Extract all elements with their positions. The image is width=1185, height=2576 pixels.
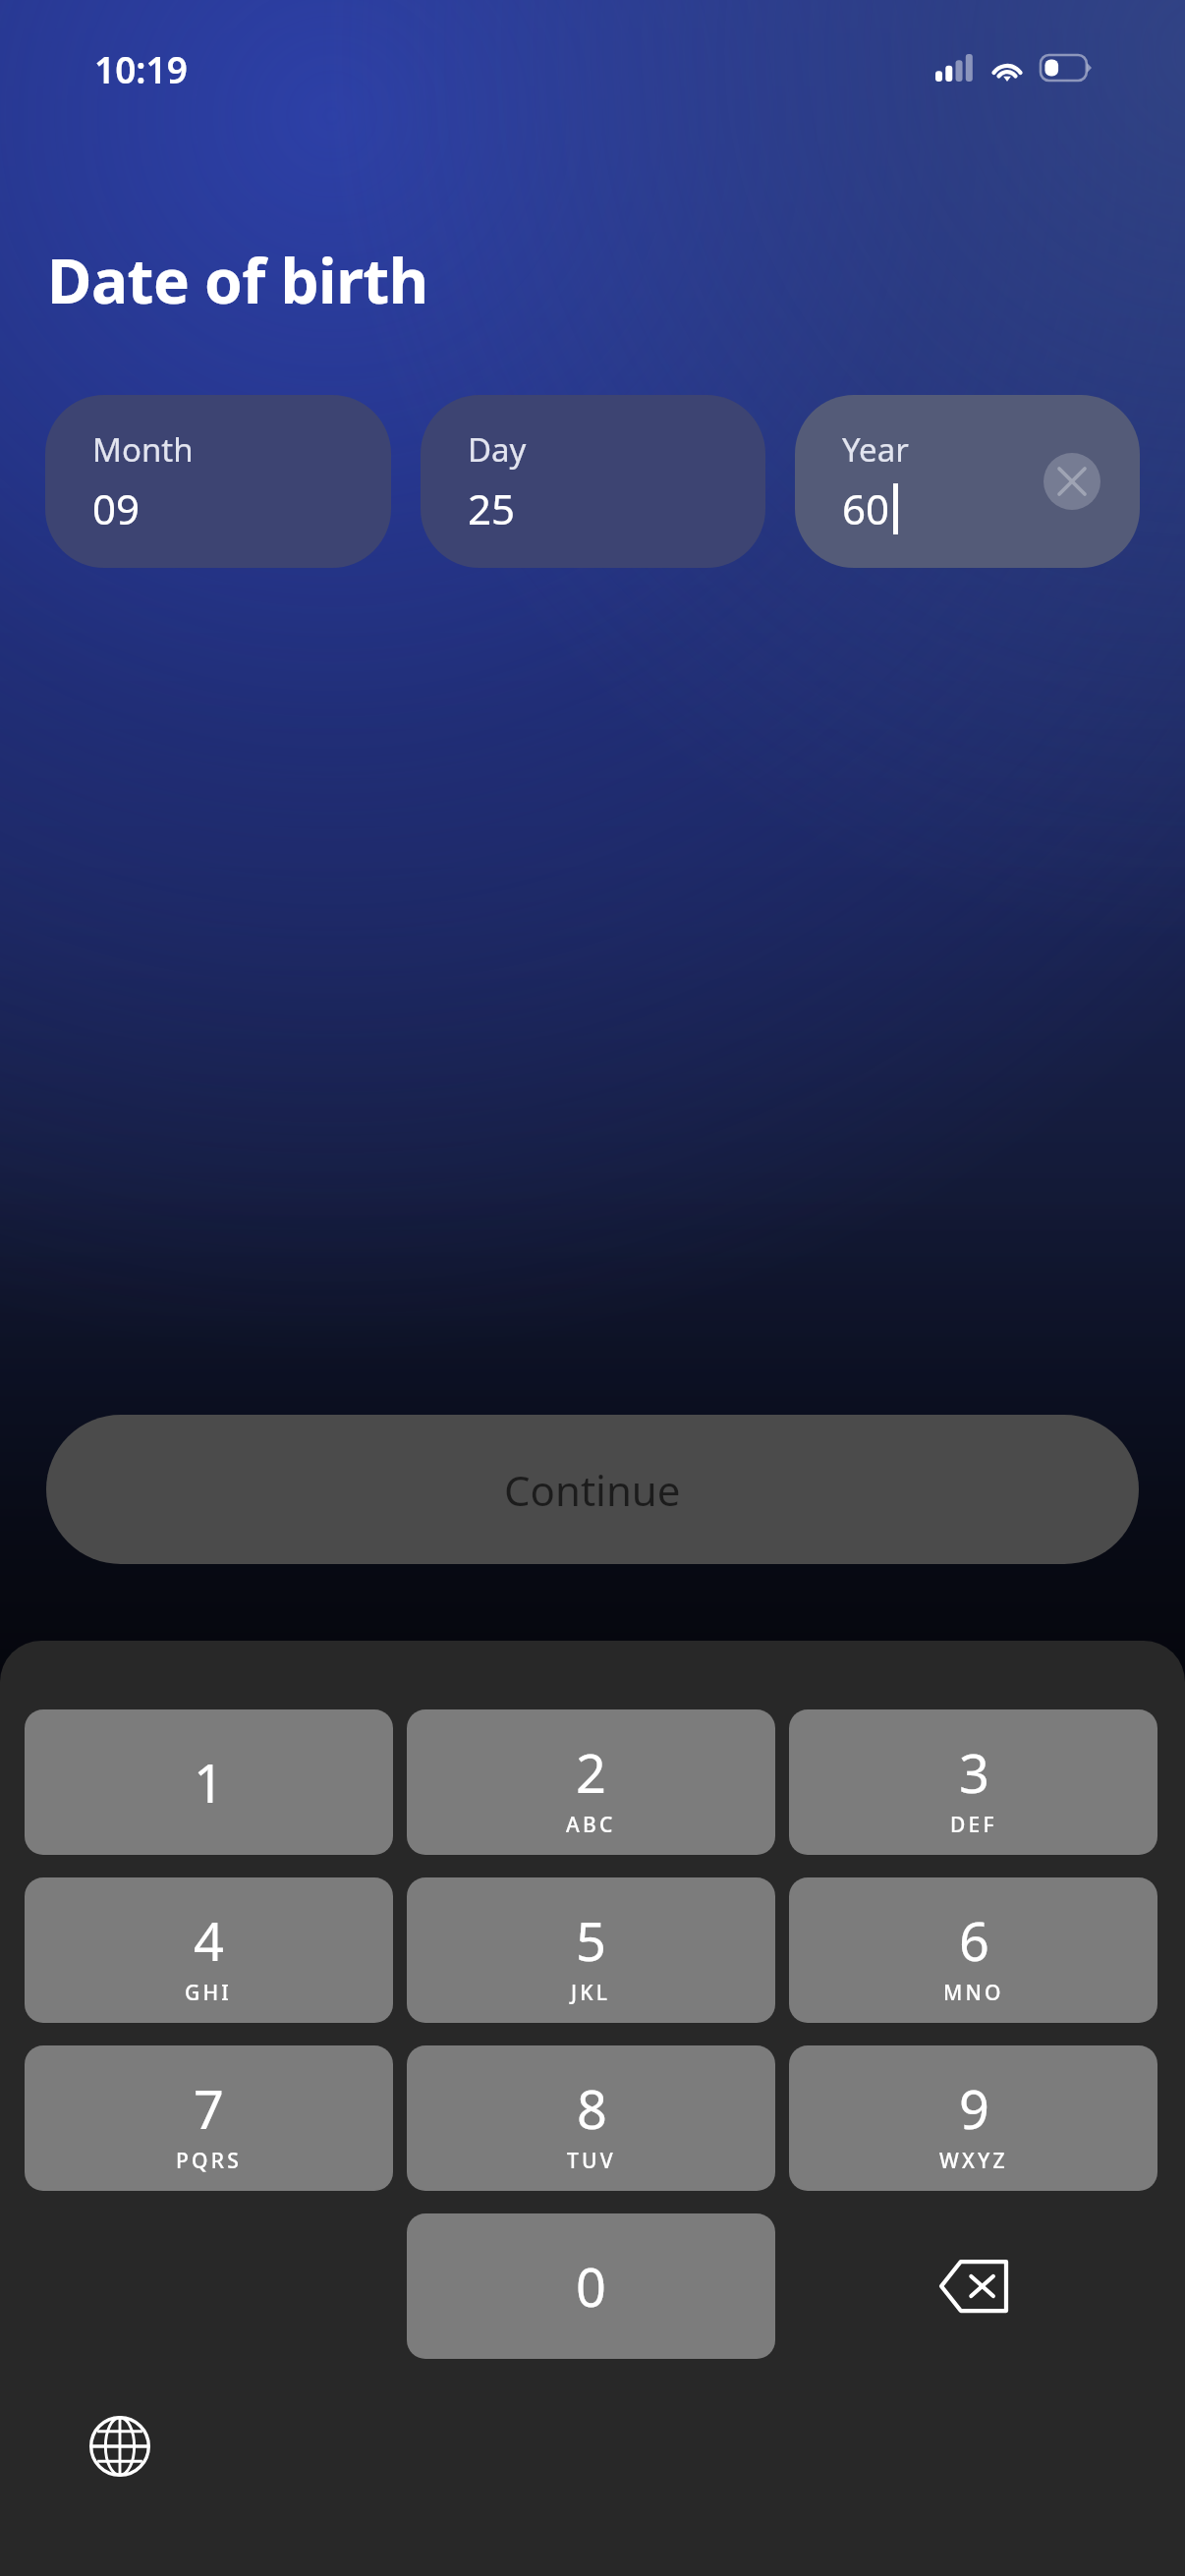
staticText: 7 — [194, 2072, 224, 2145]
button[interactable]: Continue — [46, 1415, 1139, 1564]
button[interactable]: 3 — [789, 1709, 1157, 1855]
button[interactable]: 8 — [407, 2045, 775, 2191]
button[interactable]: Backspace — [789, 2213, 1157, 2359]
staticText: 9 — [959, 2072, 989, 2145]
button[interactable]: 0 — [407, 2213, 775, 2359]
staticText: GHI — [185, 1979, 233, 2007]
button[interactable]: Clear year — [1044, 453, 1100, 510]
button[interactable]: 2 — [407, 1709, 775, 1855]
staticText: Date of birth — [47, 239, 428, 321]
staticText: 6 — [959, 1904, 989, 1977]
staticText: ABC — [566, 1811, 616, 1839]
staticText: 1 — [194, 1746, 224, 1819]
button[interactable]: Switch keyboard language — [84, 2410, 156, 2483]
button[interactable]: 7 — [25, 2045, 393, 2191]
staticText: 09 — [92, 480, 141, 536]
button[interactable]: 4 — [25, 1877, 393, 2023]
staticText: Continue — [504, 1462, 681, 1518]
staticText: 4 — [194, 1904, 224, 1977]
staticText: WXYZ — [939, 2147, 1008, 2175]
staticText: TUV — [567, 2147, 616, 2175]
staticText: 0 — [576, 2250, 606, 2323]
staticText: 5 — [576, 1904, 606, 1977]
staticText: 8 — [577, 2072, 607, 2145]
staticText: Month — [92, 427, 194, 472]
staticText: 60 — [842, 480, 890, 536]
staticText: 25 — [468, 480, 516, 536]
staticText: JKL — [571, 1979, 611, 2007]
staticText: Year — [842, 427, 909, 472]
staticText: PQRS — [176, 2147, 242, 2175]
staticText: DEF — [950, 1811, 997, 1839]
button[interactable]: 6 — [789, 1877, 1157, 2023]
button[interactable]: Year — [795, 395, 1140, 568]
button[interactable]: 9 — [789, 2045, 1157, 2191]
button[interactable]: Day — [421, 395, 765, 568]
staticText: 3 — [959, 1736, 989, 1809]
staticText: Day — [468, 427, 527, 472]
button[interactable]: Month — [45, 395, 391, 568]
staticText: 10:19 — [94, 44, 188, 93]
button[interactable]: 1 — [25, 1709, 393, 1855]
button[interactable]: 5 — [407, 1877, 775, 2023]
staticText: MNO — [943, 1979, 1004, 2007]
staticText: 2 — [576, 1736, 606, 1809]
